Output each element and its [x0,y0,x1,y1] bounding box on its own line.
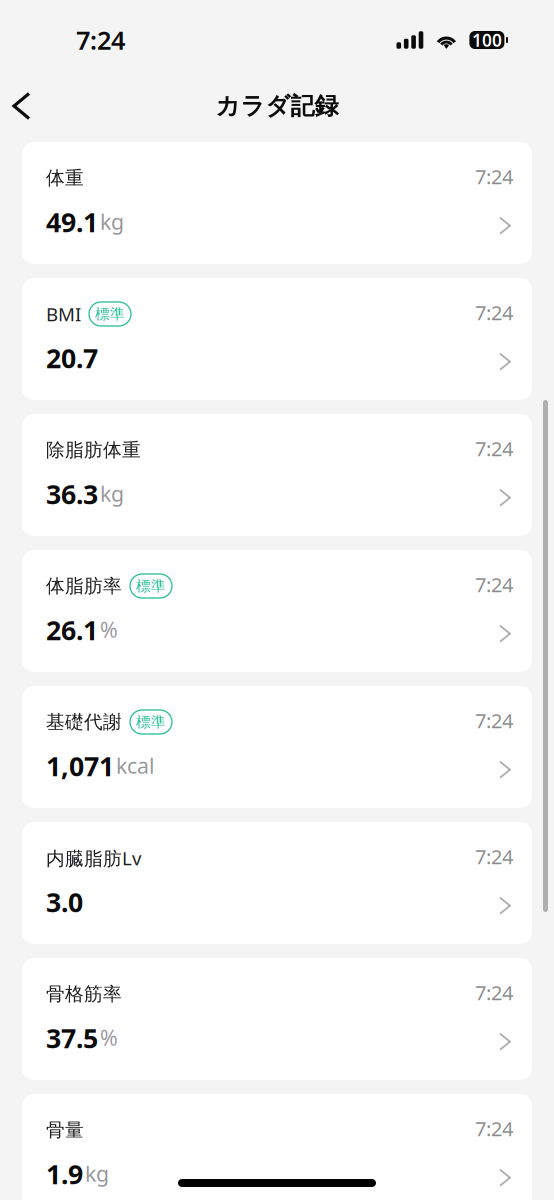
staticText: 骨格筋率 [46,982,122,1005]
button[interactable]: 骨格筋率 [22,958,532,1080]
staticText: 1,071 [46,748,114,784]
staticText: kg [100,479,124,508]
button[interactable]: 基礎代謝 [22,686,532,808]
staticText: 3.0 [46,884,83,920]
staticText: 標準 [136,713,166,731]
staticText: 100 [472,28,502,51]
staticText: 標準 [95,305,125,323]
button[interactable]: 内臓脂肪Lv [22,822,532,944]
staticText: 体脂肪率 [46,574,122,597]
staticText: 骨量 [46,1118,84,1141]
staticText: 基礎代謝 [46,710,122,733]
staticText: 7:24 [475,979,513,1006]
staticText: 49.1 [46,204,98,240]
staticText: 36.3 [46,476,98,512]
staticText: % [100,1023,118,1052]
button[interactable]: Back [0,67,47,130]
staticText: 7:24 [475,707,513,734]
staticText: 7:24 [475,299,513,326]
staticText: 7:24 [475,571,513,598]
staticText: 除脂肪体重 [46,438,141,461]
staticText: 内臓脂肪Lv [46,846,141,870]
staticText: 標準 [136,577,166,595]
staticText: 7:24 [475,163,513,190]
staticText: kg [100,207,124,236]
staticText: 20.7 [46,340,98,376]
staticText: % [100,615,118,644]
staticText: 7:24 [76,23,125,57]
button[interactable]: 体脂肪率 [22,550,532,672]
staticText: 37.5 [46,1020,98,1056]
staticText: 7:24 [475,435,513,462]
button[interactable]: 除脂肪体重 [22,414,532,536]
button[interactable]: 骨量 [22,1094,532,1200]
staticText: カラダ記録 [215,91,338,121]
staticText: BMI [46,302,81,326]
button[interactable]: BMI [22,278,532,400]
staticText: 7:24 [475,843,513,870]
staticText: 体重 [46,166,84,189]
staticText: kcal [116,751,155,780]
button[interactable]: 体重 [22,142,532,264]
staticText: 1.9 [46,1156,83,1192]
staticText: 26.1 [46,612,98,648]
staticText: 7:24 [475,1115,513,1142]
staticText: kg [85,1159,109,1188]
